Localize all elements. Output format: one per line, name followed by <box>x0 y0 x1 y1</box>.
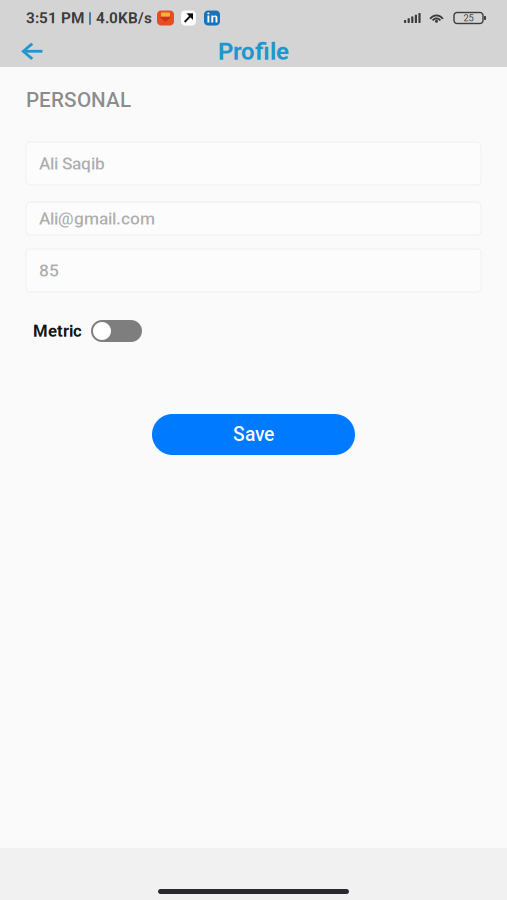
staticText: Metric <box>33 321 82 341</box>
staticText: Ali Saqib <box>39 153 105 174</box>
staticText: 3:51 PM | 4.0KB/s <box>26 9 152 27</box>
button[interactable]: Save <box>152 414 355 455</box>
staticText: Profile <box>218 37 289 65</box>
staticText: in <box>206 10 217 26</box>
button[interactable]: Metric <box>26 320 481 342</box>
staticText: 85 <box>39 260 59 281</box>
button[interactable]: Back <box>0 36 65 67</box>
staticText: 25 <box>463 12 473 23</box>
staticText: Ali@gmail.com <box>39 208 155 229</box>
staticText: PERSONAL <box>26 88 131 112</box>
staticText: Save <box>233 423 274 446</box>
